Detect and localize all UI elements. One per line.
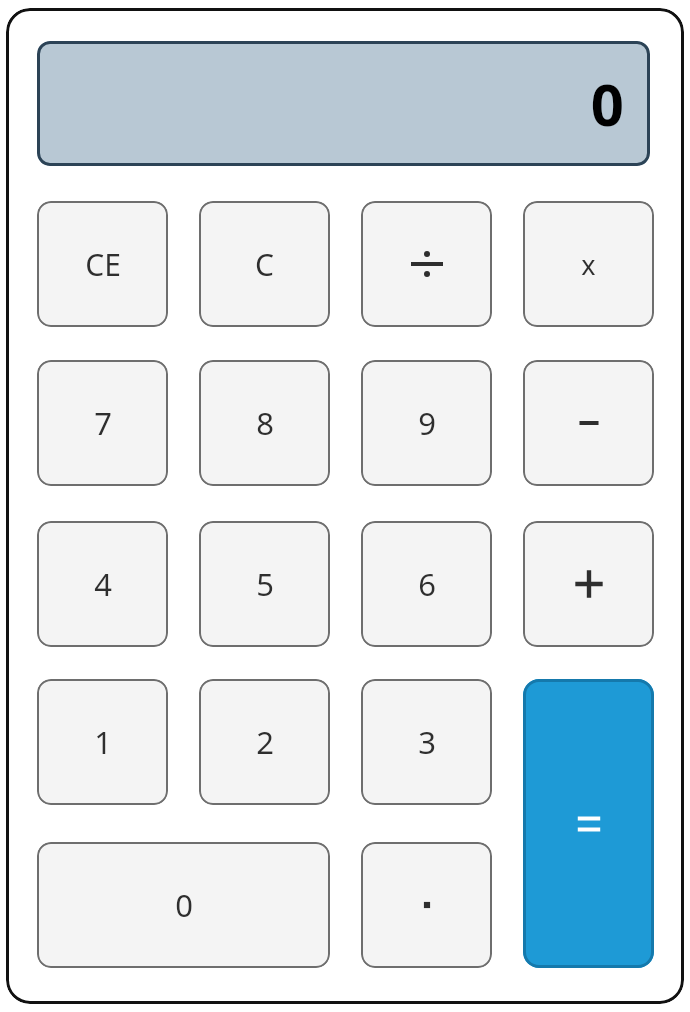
staticText: 6 bbox=[418, 563, 436, 605]
button[interactable]: 9 bbox=[361, 360, 492, 486]
staticText: 1 bbox=[94, 721, 112, 763]
button[interactable]: 4 bbox=[37, 521, 168, 647]
button[interactable]: 8 bbox=[199, 360, 330, 486]
button[interactable]: 0 bbox=[37, 842, 330, 968]
staticText: 7 bbox=[94, 402, 112, 444]
button[interactable]: x bbox=[523, 201, 654, 327]
staticText: 4 bbox=[94, 563, 112, 605]
staticText: C bbox=[255, 244, 274, 285]
button[interactable]: Minus bbox=[523, 360, 654, 486]
button[interactable]: Divide bbox=[361, 201, 492, 327]
button[interactable]: 2 bbox=[199, 679, 330, 805]
button[interactable]: 1 bbox=[37, 679, 168, 805]
button[interactable]: CE bbox=[37, 201, 168, 327]
button[interactable]: 6 bbox=[361, 521, 492, 647]
staticText: 0 bbox=[590, 64, 624, 143]
staticText: 5 bbox=[256, 563, 274, 605]
staticText: 2 bbox=[256, 721, 274, 763]
staticText: 3 bbox=[418, 721, 436, 763]
other: Display bbox=[37, 41, 650, 166]
button[interactable]: Equals bbox=[523, 679, 654, 968]
button[interactable]: Plus bbox=[523, 521, 654, 647]
staticText: 0 bbox=[175, 884, 193, 926]
button[interactable]: 5 bbox=[199, 521, 330, 647]
button[interactable]: Decimal point bbox=[361, 842, 492, 968]
staticText: 9 bbox=[418, 402, 436, 444]
button[interactable]: 7 bbox=[37, 360, 168, 486]
staticText: 8 bbox=[256, 402, 274, 444]
staticText: CE bbox=[85, 244, 121, 285]
button[interactable]: 3 bbox=[361, 679, 492, 805]
button[interactable]: C bbox=[199, 201, 330, 327]
staticText: x bbox=[581, 246, 596, 283]
